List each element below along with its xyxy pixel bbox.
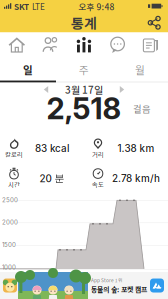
button[interactable]: 주 bbox=[56, 58, 112, 82]
staticText: 시간 bbox=[8, 180, 20, 189]
staticText: 거리 bbox=[92, 150, 104, 159]
staticText: 1500 bbox=[2, 241, 16, 248]
button[interactable]: 월 bbox=[112, 58, 168, 82]
staticText: 20 분 bbox=[39, 172, 64, 185]
staticText: SKT bbox=[14, 0, 29, 12]
button[interactable]: Statistics bbox=[67, 32, 101, 57]
button[interactable]: News bbox=[134, 32, 168, 57]
button[interactable]: Chat bbox=[101, 32, 134, 57]
staticText: 칼로리 bbox=[5, 150, 23, 159]
staticText: 통계 bbox=[71, 13, 97, 33]
staticText: 속도 bbox=[92, 180, 104, 189]
staticText: App Store 1위 bbox=[91, 277, 122, 284]
staticText: 2500 bbox=[2, 196, 18, 204]
staticText: 월 bbox=[135, 62, 145, 77]
staticText: 오후 9:48 bbox=[78, 0, 114, 13]
staticText: 83 kcal bbox=[35, 142, 69, 154]
staticText: 2000 bbox=[2, 219, 18, 226]
button[interactable]: Share bbox=[139, 14, 168, 32]
button[interactable]: Previous day bbox=[39, 83, 53, 95]
staticText: LTE bbox=[32, 0, 45, 12]
button[interactable]: Next day bbox=[115, 83, 129, 95]
button[interactable]: Friends bbox=[34, 32, 67, 57]
staticText: 2.78 km/h bbox=[112, 172, 160, 184]
staticText: 2,518 bbox=[46, 91, 121, 126]
staticText: 동물의 숲: 포켓 캠프 bbox=[91, 284, 147, 294]
button[interactable]: Home bbox=[0, 32, 34, 57]
button[interactable]: 일 bbox=[0, 58, 56, 82]
staticText: 주 bbox=[79, 62, 89, 77]
button[interactable]: Advertisement: 동물의 숲 포켓 캠프 bbox=[0, 272, 168, 299]
staticText: 3월 17일 bbox=[65, 82, 103, 97]
staticText: 걸음 bbox=[133, 102, 151, 115]
staticText: 1.38 km bbox=[117, 142, 154, 154]
staticText: 1000 bbox=[2, 264, 16, 271]
staticText: 일 bbox=[23, 62, 33, 77]
